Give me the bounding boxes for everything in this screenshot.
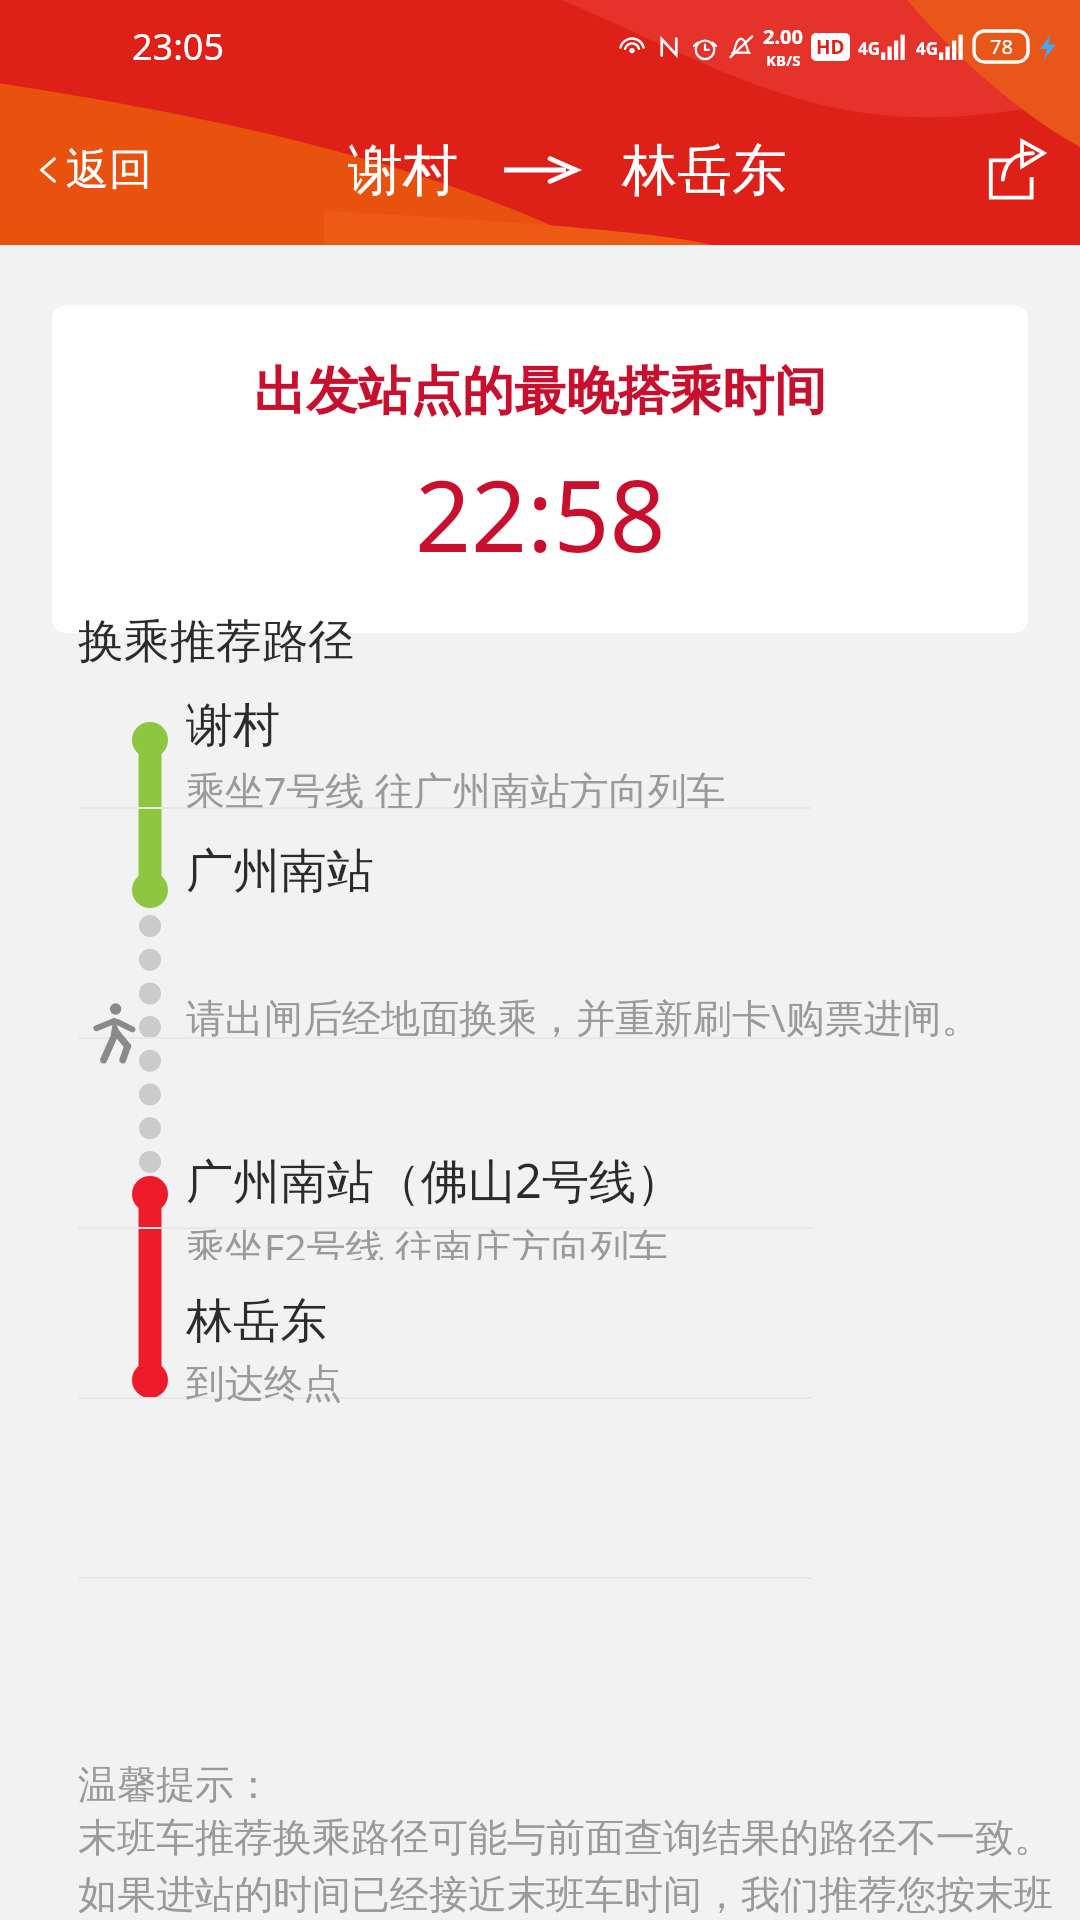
button[interactable]: 谢村: [0, 696, 1080, 808]
staticText: 2.00: [763, 23, 803, 50]
staticText: 林岳东: [186, 1292, 327, 1351]
staticText: 谢村: [186, 696, 280, 755]
staticText: 换乘推荐路径: [78, 613, 354, 671]
staticText: 广州南站（佛山2号线）: [186, 1148, 683, 1212]
button[interactable]: 出发站点的最晚搭乘时间: [52, 305, 1028, 633]
button[interactable]: 林岳东: [0, 1292, 1080, 1404]
staticText: 谢村: [348, 136, 458, 205]
staticText: 返回: [66, 143, 152, 197]
staticText: 4G: [858, 37, 881, 60]
staticText: 末班车推荐换乘路径可能与前面查询结果的路径不一致。 如果进站的时间已经接近末班车…: [78, 1813, 1053, 1920]
staticText: 到达终点: [186, 1359, 342, 1404]
staticText: 78: [990, 33, 1013, 60]
button[interactable]: 广州南站（佛山2号线）: [0, 1148, 1080, 1260]
button[interactable]: Share: [976, 130, 1056, 210]
staticText: 22:58: [415, 447, 666, 580]
staticText: 4G: [916, 37, 939, 60]
staticText: HD: [816, 34, 845, 60]
staticText: 温馨提示：: [78, 1760, 273, 1809]
staticText: 出发站点的最晚搭乘时间: [254, 359, 826, 425]
staticText: 乘坐7号线 往广州南站方向列车: [186, 763, 726, 808]
staticText: KB/S: [766, 50, 801, 70]
staticText: 请出闸后经地面换乘，并重新刷卡\购票进闸。: [186, 990, 981, 1043]
button[interactable]: 返回: [24, 131, 160, 209]
staticText: 乘坐F2号线 往南庄方向列车: [186, 1220, 668, 1260]
staticText: 林岳东: [622, 136, 787, 205]
button[interactable]: 广州南站: [0, 842, 1080, 938]
staticText: 23:05: [132, 22, 225, 71]
staticText: 广州南站: [186, 842, 374, 901]
